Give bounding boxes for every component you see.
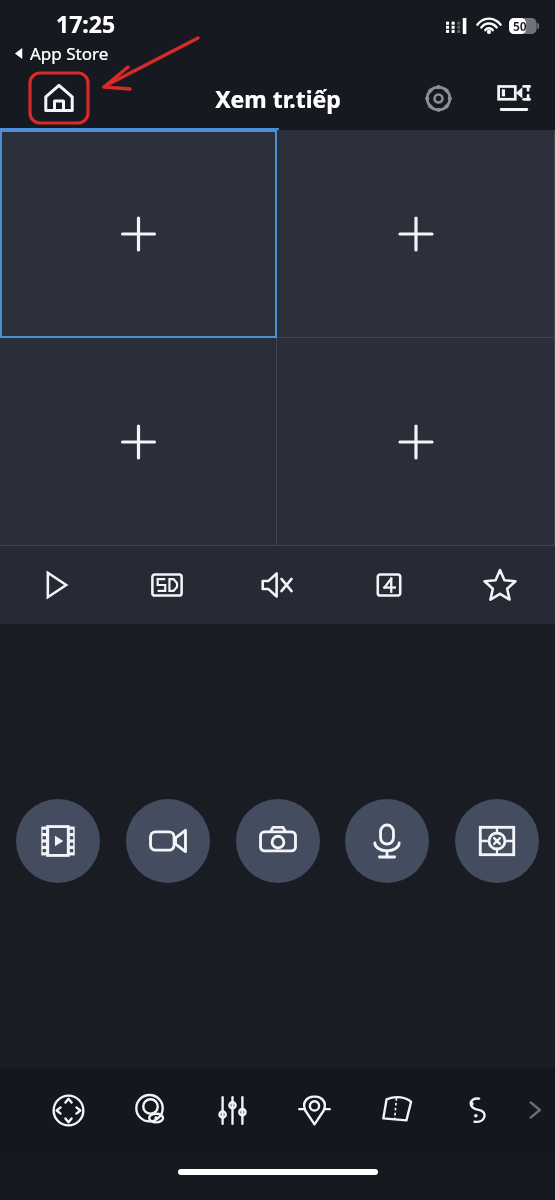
staticText: Xem tr.tiếp [215,83,341,114]
button[interactable]: Wiper [355,1068,437,1152]
button[interactable]: More [437,1068,519,1152]
button[interactable]: Image settings [191,1068,273,1152]
button[interactable]: Layout 4 [333,546,444,624]
button[interactable]: Home [30,73,88,123]
button[interactable]: Position [273,1068,355,1152]
button[interactable]: Microphone [345,799,429,883]
staticText: 50 [513,18,527,34]
staticText: App Store [30,42,109,65]
button[interactable]: Pan tilt [28,1068,109,1152]
button[interactable]: Favorite [444,546,555,624]
button[interactable]: Next [519,1068,551,1152]
staticText: 17:25 [56,8,116,39]
button[interactable]: PTZ preset [455,799,539,883]
button[interactable]: Record clip [16,799,100,883]
button[interactable]: Settings [415,75,461,121]
button[interactable] [277,338,555,546]
button[interactable]: Camera list [491,75,537,121]
button[interactable] [0,130,277,338]
button[interactable]: Zoom focus [109,1068,191,1152]
button[interactable]: Video [126,799,210,883]
button[interactable]: Mute [222,546,333,624]
button[interactable]: Play [0,546,111,624]
button[interactable]: Snapshot [236,799,320,883]
button[interactable] [277,130,555,338]
button[interactable] [0,338,277,546]
button[interactable]: Quality SD [111,546,222,624]
